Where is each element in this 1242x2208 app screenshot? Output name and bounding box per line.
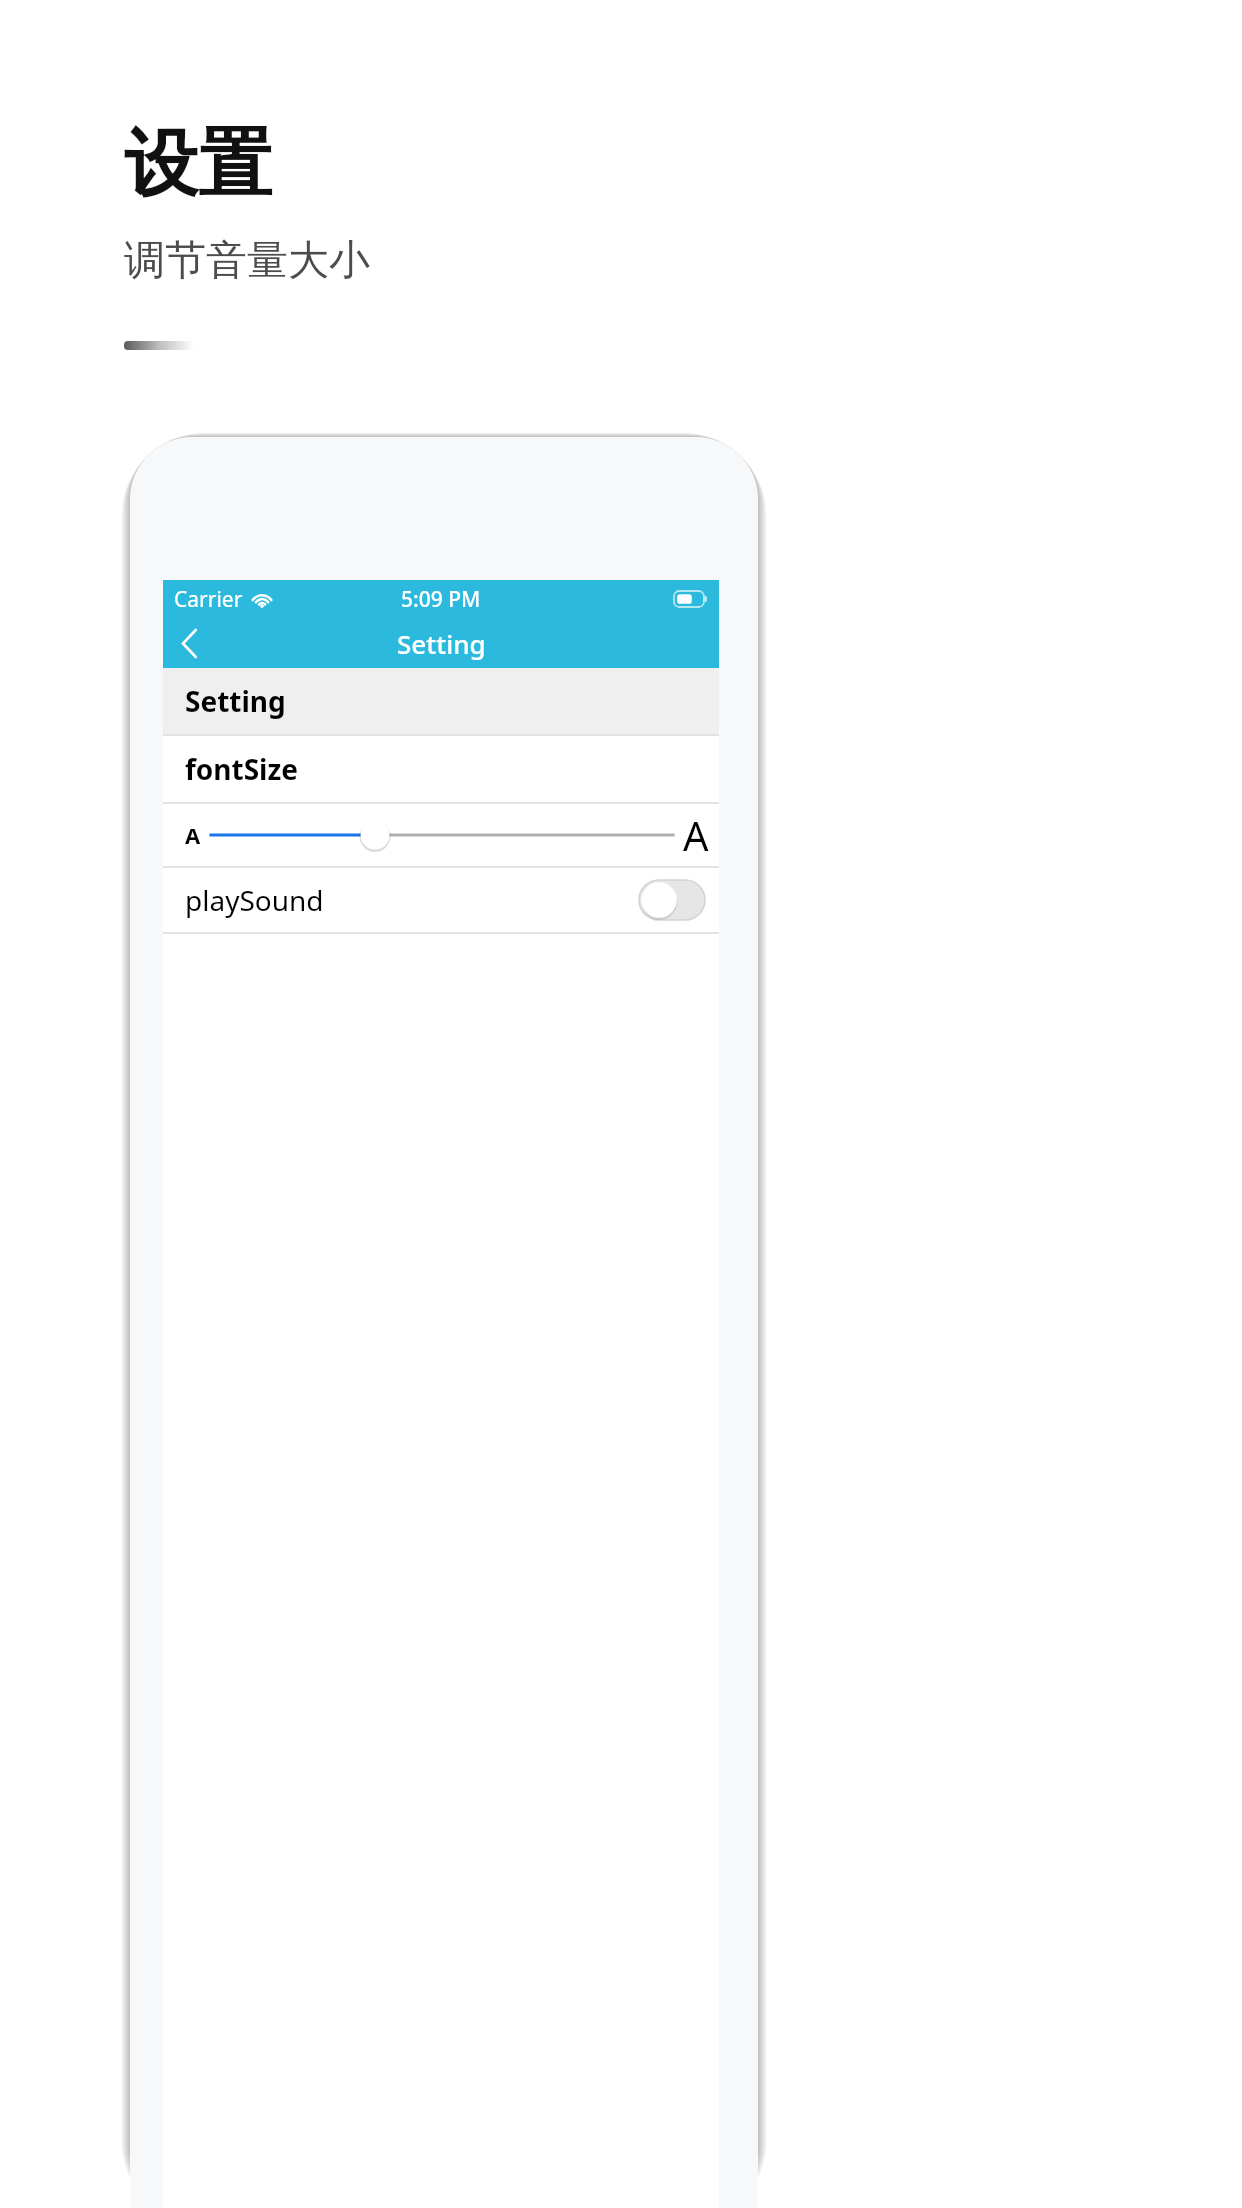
staticText: 设置 xyxy=(124,118,272,211)
button[interactable]: Setting xyxy=(163,668,719,734)
staticText: 5:09 PM xyxy=(401,585,481,614)
staticText: Carrier xyxy=(174,585,243,614)
button[interactable]: Back xyxy=(163,618,215,668)
button[interactable]: A xyxy=(163,804,719,866)
staticText: A xyxy=(683,808,709,862)
staticText: playSound xyxy=(185,881,324,919)
button[interactable]: fontSize xyxy=(163,736,719,802)
staticText: Setting xyxy=(185,682,286,720)
button[interactable]: playSound toggle xyxy=(639,880,705,920)
staticText: Setting xyxy=(397,626,486,661)
staticText: fontSize xyxy=(185,750,299,788)
button[interactable]: playSound xyxy=(163,868,719,932)
staticText: A xyxy=(185,820,201,850)
staticText: 调节音量大小 xyxy=(124,235,370,287)
